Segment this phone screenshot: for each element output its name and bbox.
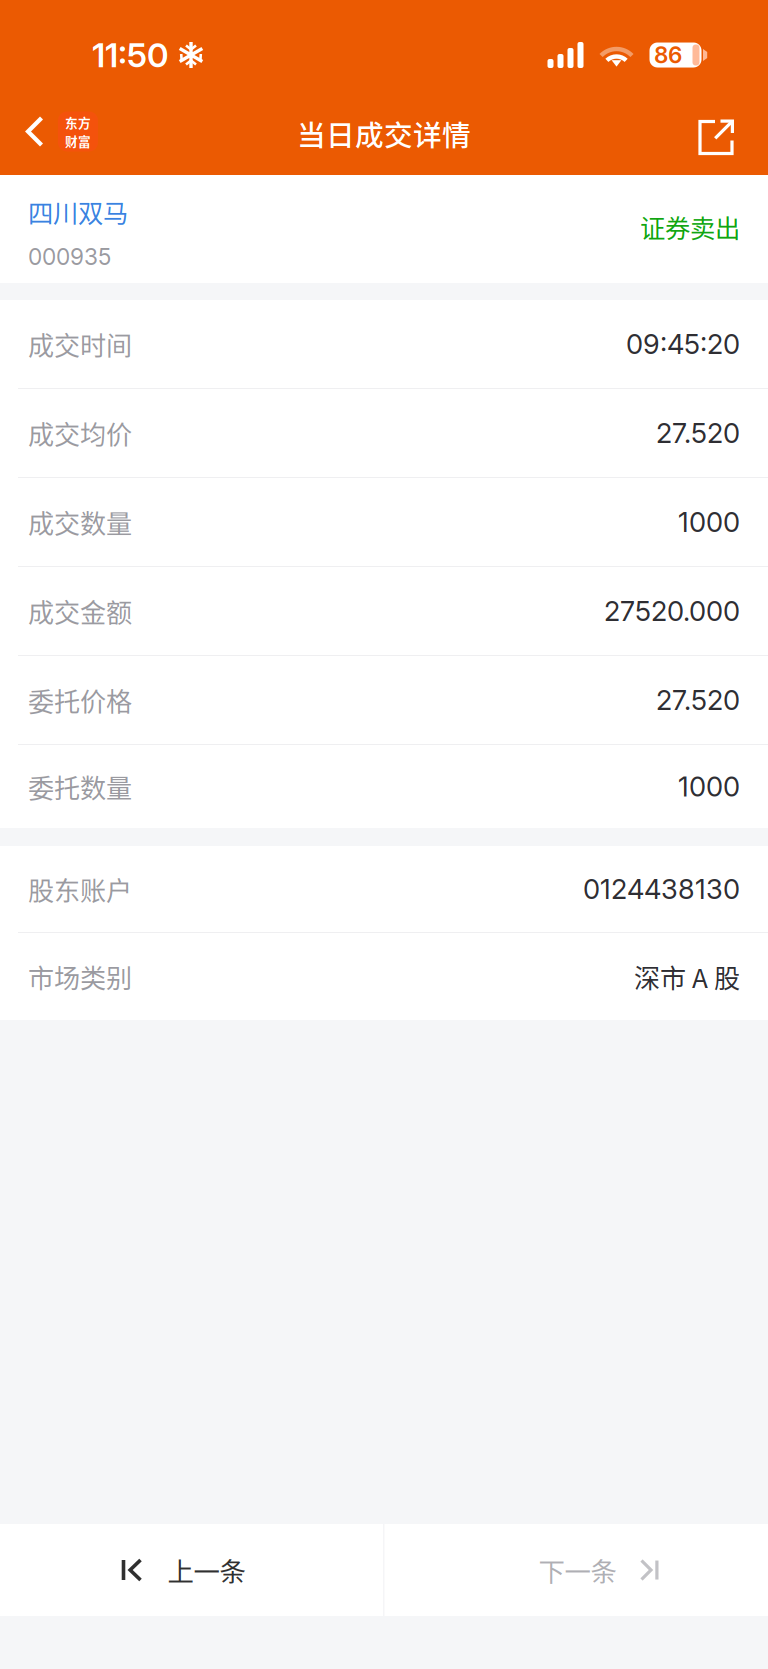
staticText: 27.520	[656, 416, 740, 450]
staticText: 当日成交详情	[297, 113, 471, 154]
staticText: 证券卖出	[640, 208, 740, 245]
staticText: 成交数量	[28, 503, 132, 541]
staticText: 四川双马	[28, 193, 128, 230]
staticText: 1000	[678, 770, 740, 803]
staticText: 深市 A 股	[634, 958, 740, 995]
staticText: 委托价格	[28, 681, 132, 719]
staticText: 0124438130	[583, 872, 740, 906]
staticText: 市场类别	[28, 958, 132, 995]
button[interactable]: 分享	[674, 88, 768, 175]
staticText: 27.520	[656, 683, 740, 717]
staticText: 成交金额	[28, 592, 132, 630]
button[interactable]: 返回	[0, 88, 114, 175]
staticText: 000935	[28, 243, 111, 270]
staticText: 财富	[65, 131, 91, 150]
staticText: 东方	[65, 113, 91, 131]
staticText: 11:50	[92, 35, 169, 75]
staticText: 27520.000	[604, 594, 740, 628]
staticText: 成交均价	[28, 414, 132, 452]
staticText: 股东账户	[28, 870, 132, 908]
button[interactable]: 下一条	[384, 1524, 768, 1616]
staticText: 86	[654, 41, 682, 69]
staticText: 09:45:20	[626, 327, 740, 361]
staticText: 委托数量	[28, 768, 132, 805]
staticText: 下一条	[538, 1551, 616, 1589]
staticText: 成交时间	[28, 325, 132, 363]
staticText: 1000	[678, 505, 740, 539]
staticText: 上一条	[167, 1551, 245, 1589]
button[interactable]: 上一条	[0, 1524, 383, 1616]
